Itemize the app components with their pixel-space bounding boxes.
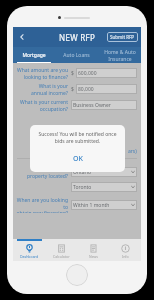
button[interactable]: Home & Auto Insurance [98, 47, 141, 63]
staticText: What is your annual income? [13, 83, 68, 96]
button[interactable]: News [77, 239, 109, 261]
staticText: Calculator [53, 254, 70, 259]
staticText: OK [73, 154, 83, 164]
button[interactable]: Info [109, 239, 141, 261]
staticText: Business Owner [73, 102, 111, 109]
button[interactable]: Auto Loans [55, 47, 98, 63]
button[interactable]: 600,000 [76, 68, 137, 78]
button[interactable]: Submit RFP [107, 32, 138, 42]
button[interactable]: Business Owner [71, 100, 137, 110]
button[interactable]: Toronto [71, 182, 137, 192]
staticText: $ [71, 70, 74, 77]
staticText: 600,000 [78, 70, 97, 77]
staticText: Where is your property located? [13, 166, 68, 179]
button[interactable]: Within 1 month [71, 200, 137, 210]
button[interactable]: Mortgage [13, 47, 55, 63]
button[interactable]: Ontario [71, 167, 137, 177]
staticText: ars) [128, 148, 137, 155]
button[interactable]: Calculator [45, 239, 77, 261]
staticText: Home & Auto Insurance [104, 49, 136, 62]
staticText: 80,000 [78, 86, 94, 93]
staticText: $ [71, 86, 74, 93]
button[interactable]: Back [15, 30, 29, 44]
staticText: Ontario [73, 169, 91, 176]
button[interactable]: Dashboard [13, 239, 45, 261]
staticText: Info [122, 254, 129, 259]
staticText: What is your current occupation? [13, 99, 68, 112]
staticText: News [89, 254, 98, 259]
staticText: Dashboard [20, 254, 39, 259]
staticText: Within 1 month [73, 202, 110, 209]
staticText: Auto Loans [63, 52, 90, 59]
staticText: NEW RFP [59, 32, 96, 43]
staticText: Submit RFP [110, 34, 135, 40]
staticText: Toronto [73, 184, 92, 191]
staticText: Mortgage [22, 52, 46, 59]
staticText: Success! You will be notified once bids … [35, 131, 120, 145]
staticText: When are you looking to obtain new finan… [13, 197, 68, 213]
button[interactable]: 80,000 [76, 84, 137, 94]
staticText: What amount are you looking to finance? [13, 67, 68, 80]
button[interactable]: OK [63, 152, 93, 166]
